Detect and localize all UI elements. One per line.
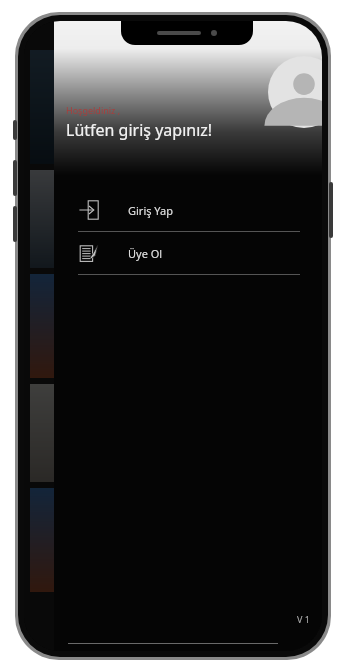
staticText: Hoşgeldiniz , (66, 104, 121, 116)
button[interactable] (30, 488, 316, 592)
other: Giriş Yap (79, 200, 99, 220)
staticText: V 1 (297, 613, 310, 625)
button[interactable]: Üye Ol (54, 232, 322, 274)
button[interactable] (30, 50, 316, 164)
staticText: Üye Ol (128, 246, 163, 261)
staticText: Giriş Yap (128, 203, 173, 218)
button[interactable] (30, 384, 316, 482)
other: Üye Ol (79, 243, 99, 263)
button[interactable] (30, 170, 316, 268)
staticText: Lütfen giriş yapınız! (66, 119, 213, 141)
button[interactable]: Giriş Yap (54, 189, 322, 231)
button[interactable] (30, 274, 316, 378)
